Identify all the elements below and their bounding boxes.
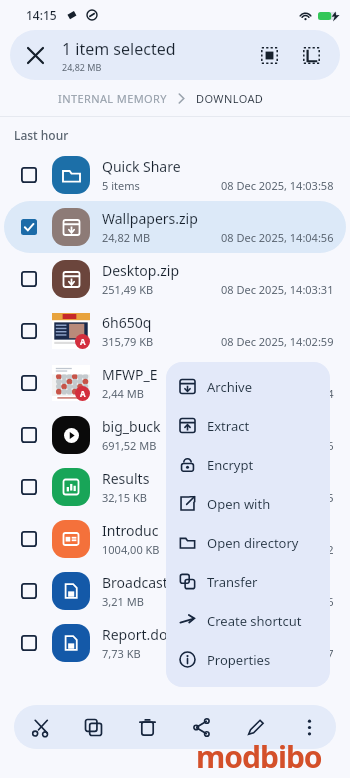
button[interactable]: INTERNAL MEMORY bbox=[58, 91, 167, 106]
button[interactable]: Select Broadcast.doc bbox=[14, 576, 44, 606]
button[interactable]: Cut bbox=[14, 705, 67, 749]
staticText: 24,82 MB bbox=[62, 61, 102, 73]
staticText: Introduc bbox=[102, 521, 159, 540]
staticText: 24,82 MB bbox=[102, 230, 151, 245]
button[interactable]: Select Quick Share bbox=[14, 160, 44, 190]
staticText: 32,15 KB bbox=[102, 490, 147, 505]
button[interactable]: Select Quick Share bbox=[4, 149, 346, 201]
button[interactable]: Close selection bbox=[16, 36, 54, 74]
staticText: Open with bbox=[207, 495, 271, 513]
staticText: Extract bbox=[207, 417, 250, 435]
staticText: Last hour bbox=[14, 127, 69, 143]
button[interactable]: Select Desktop.zip bbox=[4, 253, 346, 305]
staticText: 691,52 MB bbox=[102, 438, 157, 453]
staticText: Transfer bbox=[207, 573, 258, 591]
button[interactable]: DOWNLOAD bbox=[196, 91, 264, 106]
button[interactable]: Copy bbox=[67, 705, 120, 749]
staticText: 08 Dec 2025, 14:03:31 bbox=[221, 282, 334, 297]
staticText: A bbox=[80, 336, 86, 347]
button[interactable]: Select Report.doc bbox=[4, 617, 346, 669]
staticText: INTERNAL MEMORY bbox=[58, 91, 167, 106]
staticText: 7,73 KB bbox=[102, 646, 141, 661]
staticText: Encrypt bbox=[207, 456, 254, 474]
button[interactable]: Open directory bbox=[166, 523, 330, 562]
staticText: Broadcast.doc bbox=[102, 573, 196, 592]
staticText: 08 Dec 2025, 13:29:47 bbox=[221, 646, 334, 661]
staticText: 08 Dec 2025, 13:31:06 bbox=[221, 594, 334, 609]
button[interactable]: Create shortcut bbox=[166, 601, 330, 640]
staticText: 08 Dec 2025, 13:33:02 bbox=[221, 542, 334, 557]
button[interactable]: Properties bbox=[166, 640, 330, 679]
button[interactable]: Select Results bbox=[14, 472, 44, 502]
staticText: Properties bbox=[207, 651, 271, 669]
staticText: 08 Dec 2025, 14:04:56 bbox=[221, 230, 334, 245]
button[interactable]: Open with bbox=[166, 484, 330, 523]
staticText: 1004,00 KB bbox=[102, 542, 160, 557]
staticText: Open directory bbox=[207, 534, 299, 552]
staticText: 251,49 KB bbox=[102, 282, 154, 297]
staticText: 5 items bbox=[102, 178, 140, 193]
button[interactable]: Select 6h650q bbox=[14, 316, 44, 346]
staticText: 08 Dec 2025, 13:56:46 bbox=[221, 438, 334, 453]
button[interactable]: Select all bbox=[252, 38, 286, 72]
staticText: 08 Dec 2025, 14:02:59 bbox=[221, 334, 334, 349]
button[interactable]: Share bbox=[174, 705, 228, 749]
staticText: 08 Dec 2025, 13:41:25 bbox=[221, 490, 334, 505]
button[interactable]: Archive bbox=[166, 367, 330, 406]
button[interactable]: Select big_buck bbox=[4, 409, 346, 461]
button[interactable]: Select Results bbox=[4, 461, 346, 513]
staticText: big_buck bbox=[102, 417, 161, 436]
staticText: 2,44 MB bbox=[102, 386, 144, 401]
staticText: Report.doc bbox=[102, 625, 175, 644]
button[interactable]: Rename bbox=[228, 705, 282, 749]
button[interactable]: Select Broadcast.doc bbox=[4, 565, 346, 617]
button[interactable]: Select MFWP_E bbox=[4, 357, 346, 409]
button[interactable]: Select 6h650q bbox=[4, 305, 346, 357]
button[interactable]: Delete bbox=[120, 705, 174, 749]
button[interactable]: Select Introduc bbox=[4, 513, 346, 565]
button[interactable]: Select Introduc bbox=[14, 524, 44, 554]
staticText: MFWP_E bbox=[102, 365, 158, 384]
button[interactable]: Transfer bbox=[166, 562, 330, 601]
staticText: 6h650q bbox=[102, 313, 152, 332]
staticText: DOWNLOAD bbox=[196, 91, 264, 106]
staticText: Create shortcut bbox=[207, 612, 302, 630]
button[interactable]: Select MFWP_E bbox=[14, 368, 44, 398]
staticText: 315,79 KB bbox=[102, 334, 154, 349]
button[interactable]: Selection mode bbox=[294, 38, 328, 72]
staticText: 08 Dec 2025, 14:01:34 bbox=[221, 386, 334, 401]
button[interactable]: Select Report.doc bbox=[14, 628, 44, 658]
staticText: Desktop.zip bbox=[102, 261, 179, 280]
staticText: 14:15 bbox=[26, 7, 57, 23]
button[interactable]: Select big_buck bbox=[14, 420, 44, 450]
staticText: Wallpapers.zip bbox=[102, 209, 198, 228]
staticText: modbibo bbox=[196, 736, 322, 777]
staticText: 3,21 MB bbox=[102, 594, 144, 609]
staticText: 1 item selected bbox=[62, 38, 176, 60]
button[interactable]: Close selection bbox=[10, 30, 340, 80]
button[interactable]: Encrypt bbox=[166, 445, 330, 484]
button[interactable]: Select Wallpapers.zip bbox=[14, 212, 44, 242]
button[interactable]: Select Wallpapers.zip bbox=[4, 201, 346, 253]
button[interactable]: Select Desktop.zip bbox=[14, 264, 44, 294]
staticText: Results bbox=[102, 469, 150, 488]
button[interactable]: Extract bbox=[166, 406, 330, 445]
button[interactable]: More options bbox=[282, 705, 336, 749]
staticText: 08 Dec 2025, 14:03:58 bbox=[221, 178, 334, 193]
staticText: Archive bbox=[207, 378, 252, 396]
staticText: A bbox=[80, 388, 86, 399]
staticText: Quick Share bbox=[102, 157, 181, 176]
